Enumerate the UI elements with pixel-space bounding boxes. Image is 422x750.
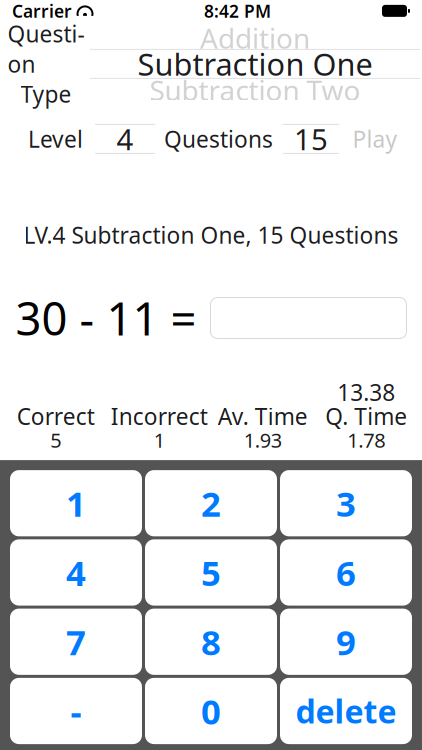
staticText: 8 bbox=[201, 619, 221, 665]
staticText: 4 bbox=[66, 549, 86, 595]
staticText: 1 bbox=[66, 480, 86, 526]
staticText: Level bbox=[28, 124, 83, 154]
button[interactable]: 4 bbox=[10, 539, 142, 606]
staticText: Question bbox=[7, 19, 84, 79]
button[interactable]: Question Type bbox=[90, 28, 420, 100]
staticText: delete bbox=[295, 690, 396, 732]
staticText: 15 bbox=[294, 119, 328, 158]
staticText: Q. Time bbox=[325, 401, 407, 431]
staticText: 0 bbox=[201, 688, 221, 734]
button[interactable]: Play bbox=[348, 124, 402, 154]
button[interactable]: 15 bbox=[283, 124, 339, 154]
staticText: 6 bbox=[336, 549, 356, 595]
staticText: 30 - 11 = bbox=[15, 288, 196, 348]
staticText: Incorrect bbox=[111, 401, 208, 431]
staticText: LV.4 Subtraction One, 15 Questions bbox=[23, 220, 398, 250]
staticText: 9 bbox=[336, 619, 356, 665]
button[interactable]: 7 bbox=[10, 609, 142, 675]
staticText: 1.93 bbox=[244, 427, 282, 453]
button[interactable]: 1 bbox=[10, 470, 142, 536]
staticText: 1 bbox=[154, 427, 165, 453]
staticText: Av. Time bbox=[218, 401, 308, 431]
staticText: Carrier bbox=[12, 0, 72, 22]
staticText: 13.38 bbox=[337, 377, 395, 407]
staticText: Correct bbox=[17, 401, 95, 431]
button[interactable]: 5 bbox=[145, 539, 277, 606]
staticText: Subtraction Two bbox=[149, 71, 360, 108]
button[interactable]: 8 bbox=[145, 609, 277, 675]
button[interactable]: - bbox=[10, 678, 142, 744]
button[interactable]: 9 bbox=[280, 609, 412, 675]
staticText: 2 bbox=[201, 480, 221, 526]
button[interactable]: 6 bbox=[280, 539, 412, 606]
button[interactable]: delete bbox=[280, 678, 412, 744]
staticText: 3 bbox=[336, 480, 356, 526]
button[interactable]: 3 bbox=[280, 470, 412, 536]
staticText: 8:42 PM bbox=[204, 0, 271, 22]
staticText: 4 bbox=[116, 119, 133, 158]
staticText: 7 bbox=[66, 619, 86, 665]
button[interactable]: 2 bbox=[145, 470, 277, 536]
staticText: Subtraction One bbox=[137, 43, 372, 84]
staticText: 1.78 bbox=[347, 427, 385, 453]
staticText: 5 bbox=[50, 427, 61, 453]
button[interactable]: 0 bbox=[145, 678, 277, 744]
staticText: 5 bbox=[201, 549, 221, 595]
staticText: Type bbox=[20, 79, 71, 109]
staticText: Questions bbox=[164, 124, 273, 154]
staticText: - bbox=[70, 688, 81, 734]
button[interactable]: 4 bbox=[95, 124, 155, 154]
staticText: Play bbox=[352, 124, 397, 154]
staticText: Addition bbox=[200, 19, 310, 56]
